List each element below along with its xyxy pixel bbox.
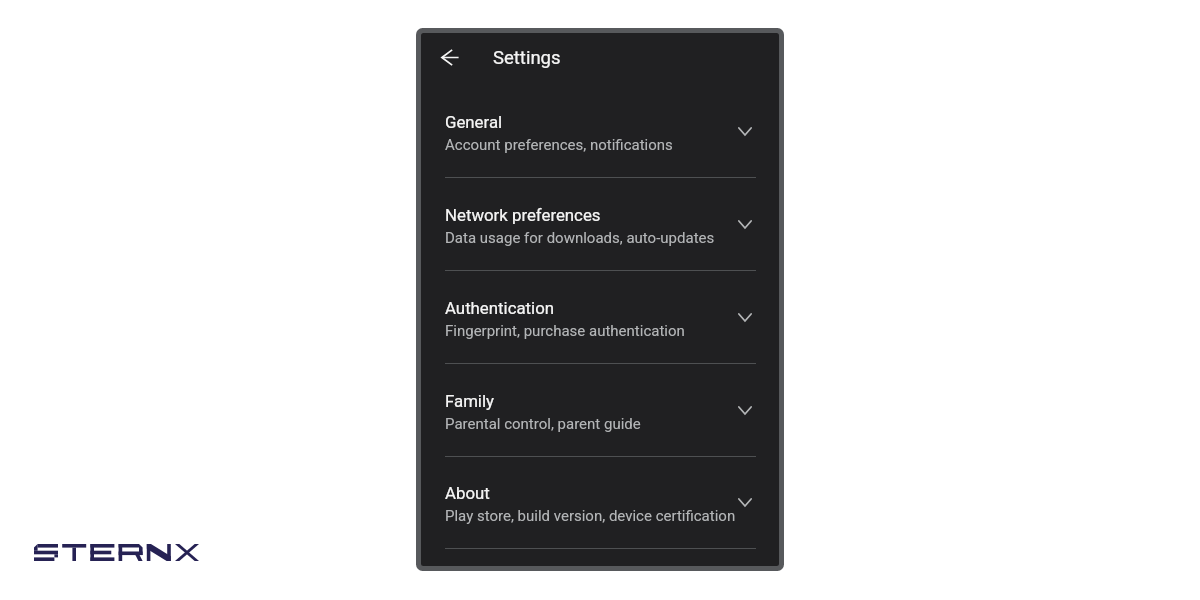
other: Expand Family — [738, 406, 752, 415]
staticText: Play store, build version, device certif… — [445, 507, 736, 525]
staticText: Network preferences — [445, 205, 601, 225]
button[interactable]: Back — [441, 49, 459, 66]
button[interactable]: Family — [421, 364, 779, 457]
button[interactable]: General — [421, 85, 779, 178]
staticText: About — [445, 483, 490, 503]
button[interactable]: About — [421, 456, 779, 549]
other: Expand About — [738, 498, 752, 507]
staticText: Account preferences, notifications — [445, 136, 673, 154]
other: Expand General — [738, 127, 752, 136]
staticText: Data usage for downloads, auto-updates — [445, 229, 715, 247]
staticText: General — [445, 112, 503, 132]
staticText: Fingerprint, purchase authentication — [445, 322, 685, 340]
staticText: Settings — [493, 47, 561, 69]
staticText: Authentication — [445, 298, 554, 318]
staticText: Family — [445, 391, 494, 411]
button[interactable]: Authentication — [421, 271, 779, 364]
other: Expand Network preferences — [738, 220, 752, 229]
staticText: Parental control, parent guide — [445, 415, 641, 433]
button[interactable]: Network preferences — [421, 178, 779, 271]
other: Expand Authentication — [738, 313, 752, 322]
